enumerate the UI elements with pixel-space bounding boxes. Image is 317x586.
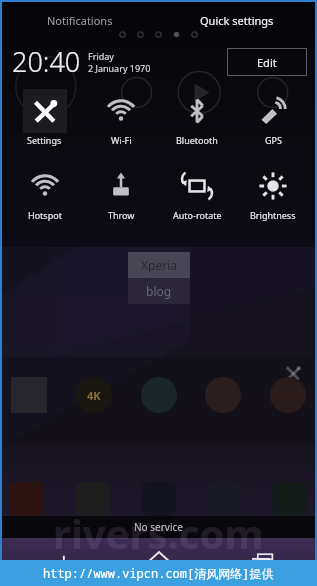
button[interactable]: Back: [2, 538, 107, 586]
button[interactable]: Shortcut 2: [76, 377, 112, 413]
button[interactable]: Auto-rotate: [159, 164, 235, 221]
button[interactable]: Wi-Fi: [83, 89, 159, 146]
button[interactable]: Shortcut 5: [270, 377, 306, 413]
staticText: Xperia: [141, 257, 177, 273]
staticText: 20:40: [12, 43, 81, 80]
staticText: Bluetooth: [176, 134, 218, 146]
button[interactable]: Hotspot: [6, 164, 83, 221]
button[interactable]: Settings: [6, 89, 83, 146]
staticText: No service: [134, 520, 183, 534]
staticText: Friday: [88, 50, 114, 62]
staticText: Hotspot: [28, 209, 62, 221]
staticText: 2 January 1970: [88, 62, 151, 74]
staticText: blog: [146, 283, 172, 299]
button[interactable]: Recent apps: [211, 538, 315, 586]
button[interactable]: Throw: [83, 164, 159, 221]
button[interactable]: Quick settings: [158, 13, 315, 28]
button[interactable]: Brightness: [235, 164, 311, 221]
staticText: Notifications: [47, 13, 113, 28]
button[interactable]: Shortcut 4: [205, 377, 241, 413]
staticText: Edit: [257, 55, 277, 70]
button[interactable]: Bluetooth: [159, 89, 235, 146]
button[interactable]: Home: [107, 538, 211, 586]
staticText: GPS: [265, 134, 282, 146]
staticText: Throw: [108, 209, 135, 221]
staticText: Auto-rotate: [173, 209, 222, 221]
button[interactable]: Notifications: [2, 13, 158, 28]
staticText: 4K: [87, 388, 101, 403]
staticText: Settings: [27, 134, 62, 146]
staticText: rivers.com: [53, 506, 264, 560]
button[interactable]: Dock app 1: [10, 482, 44, 516]
staticText: Quick settings: [200, 13, 274, 28]
button[interactable]: Shortcut 3: [141, 377, 177, 413]
staticText: http://www.vipcn.com[清风网络]提供: [43, 565, 274, 581]
button[interactable]: Edit: [227, 48, 307, 76]
button[interactable]: GPS: [235, 89, 311, 146]
staticText: Wi-Fi: [111, 134, 132, 146]
staticText: Brightness: [250, 209, 296, 221]
